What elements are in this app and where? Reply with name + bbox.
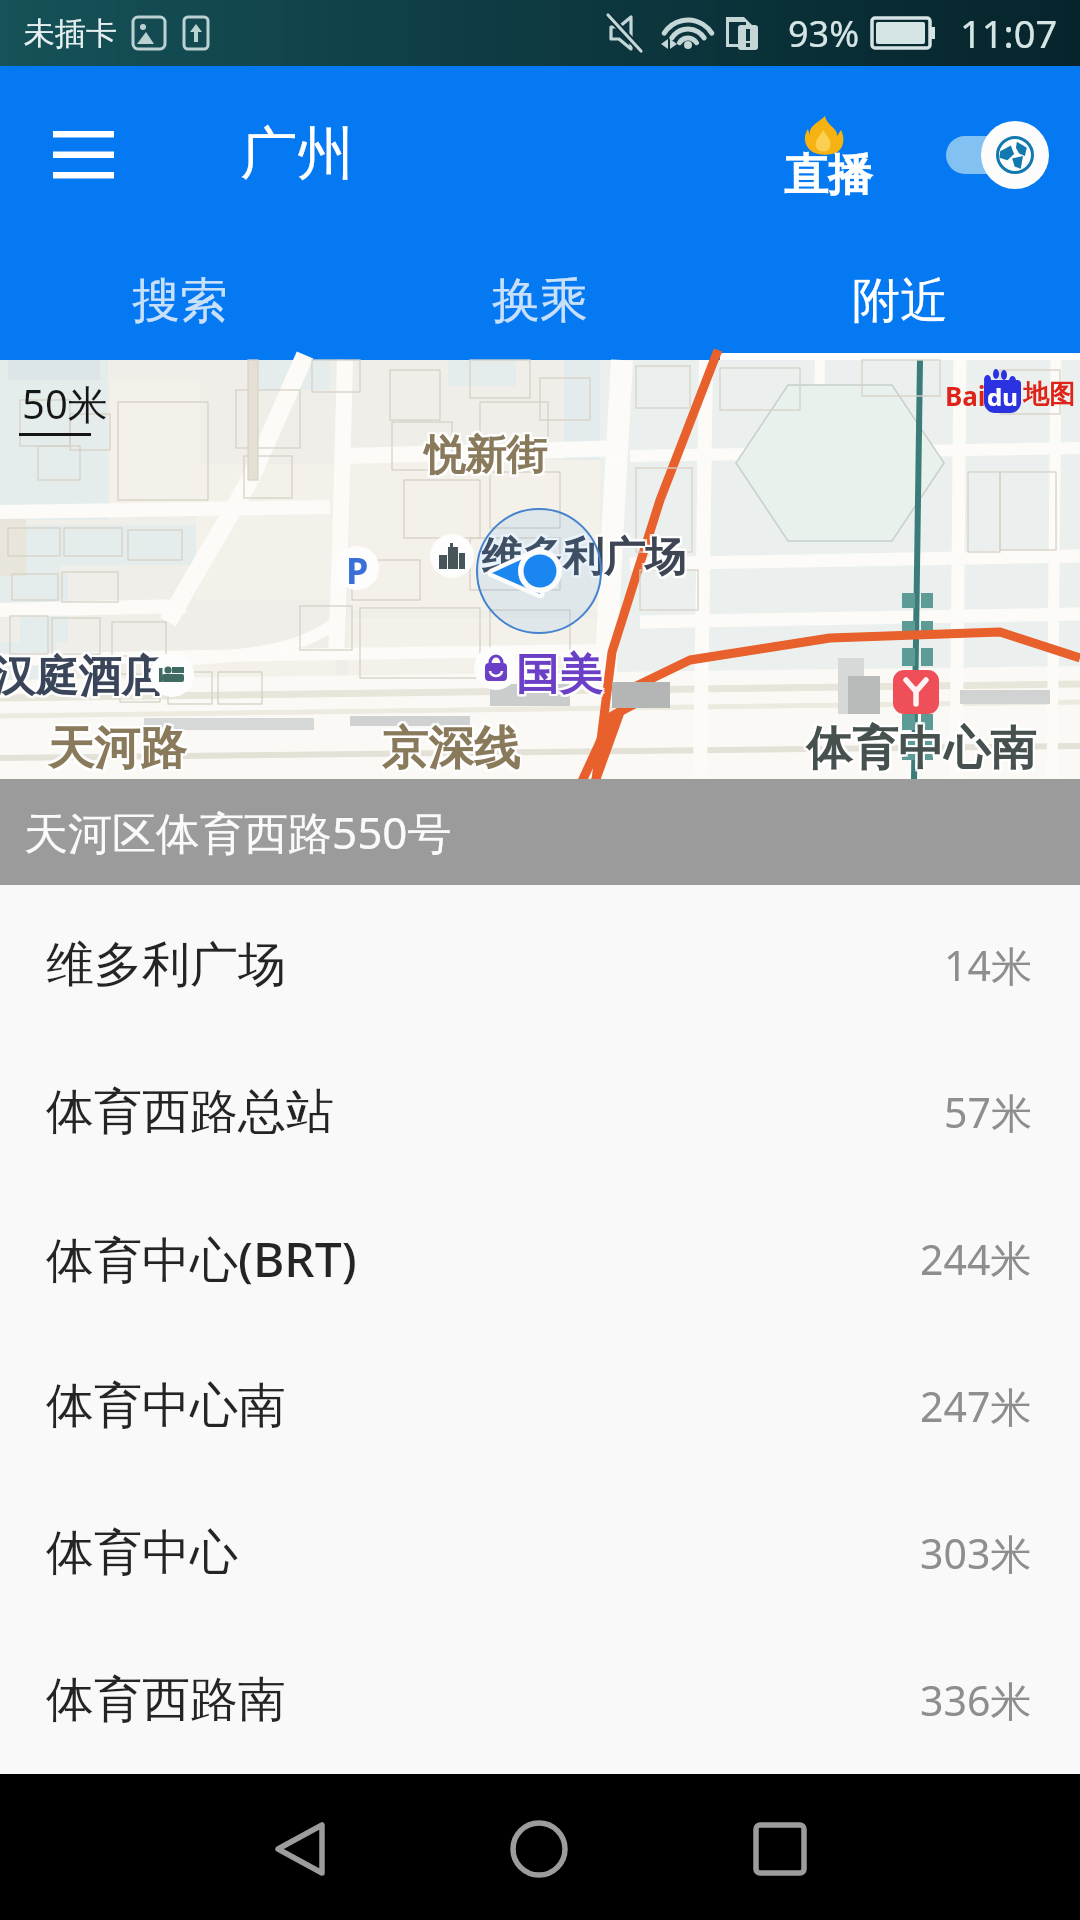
staticText: 国美 — [516, 646, 602, 700]
staticText: 搜索 — [132, 271, 228, 331]
staticText: 体育中心南 — [804, 722, 1034, 780]
button[interactable]: 体育中心南 — [0, 1332, 1080, 1479]
staticText: 换乘 — [492, 271, 588, 331]
staticText: 汉庭酒店 — [0, 650, 166, 704]
staticText: 11:07 — [960, 7, 1058, 59]
staticText: 国美 — [518, 646, 604, 700]
button[interactable]: Menu — [28, 99, 138, 209]
staticText: 悦新街 — [426, 430, 549, 482]
staticText: 57米 — [944, 1084, 1032, 1140]
staticText: 体育中心南 — [804, 718, 1034, 776]
staticText: 体育中心南 — [46, 1376, 286, 1436]
staticText: 悦新街 — [426, 428, 549, 480]
staticText: 附近 — [852, 271, 948, 331]
staticText: 维多利广场 — [479, 534, 684, 586]
staticText: 京深线 — [380, 720, 518, 778]
staticText: 维多利广场 — [481, 534, 686, 586]
staticText: 天河路 — [50, 718, 188, 776]
staticText: P — [346, 546, 369, 590]
staticText: 地图 — [1023, 378, 1075, 411]
button[interactable]: Switch to satellite map — [940, 112, 1056, 198]
staticText: 京深线 — [382, 720, 520, 778]
staticText: 体育中心南 — [808, 718, 1038, 776]
staticText: 悦新街 — [422, 432, 545, 484]
staticText: 体育中心南 — [806, 718, 1036, 776]
staticText: 天河路 — [46, 720, 184, 778]
staticText: 体育中心南 — [806, 720, 1036, 778]
staticText: 直播 — [784, 148, 872, 203]
staticText: 体育中心南 — [808, 720, 1038, 778]
staticText: 体育中心南 — [808, 722, 1038, 780]
staticText: 汉庭酒店 — [0, 652, 166, 706]
button[interactable]: Live broadcast — [770, 104, 882, 204]
staticText: 维多利广场 — [479, 530, 684, 582]
staticText: 悦新街 — [424, 428, 547, 480]
staticText: 93% — [788, 9, 860, 58]
staticText: 国美 — [518, 650, 604, 704]
button[interactable]: 体育西路总站 — [0, 1038, 1080, 1185]
staticText: 汉庭酒店 — [0, 648, 162, 702]
staticText: 国美 — [514, 648, 600, 702]
staticText: 未插卡 — [24, 14, 117, 53]
staticText: 京深线 — [380, 718, 518, 776]
staticText: 京深线 — [384, 720, 522, 778]
staticText: 天河路 — [46, 722, 184, 780]
staticText: 京深线 — [382, 718, 520, 776]
button[interactable]: 体育西路南 — [0, 1626, 1080, 1773]
staticText: 京深线 — [380, 722, 518, 780]
staticText: 天河路 — [48, 720, 186, 778]
staticText: 维多利广场 — [481, 532, 686, 584]
staticText: 京深线 — [382, 722, 520, 780]
staticText: 维多利广场 — [479, 532, 684, 584]
staticText: 体育中心南 — [804, 720, 1034, 778]
staticText: 维多利广场 — [483, 530, 688, 582]
staticText: 悦新街 — [424, 432, 547, 484]
staticText: 国美 — [518, 648, 604, 702]
staticText: 体育中心(BRT) — [46, 1226, 357, 1292]
staticText: 天河路 — [46, 718, 184, 776]
staticText: du — [987, 380, 1018, 413]
staticText: 14米 — [944, 937, 1032, 993]
staticText: 汉庭酒店 — [0, 652, 164, 706]
staticText: 汉庭酒店 — [0, 650, 162, 704]
staticText: 天河区体育西路550号 — [24, 802, 452, 862]
staticText: 汉庭酒店 — [0, 652, 162, 706]
staticText: 汉庭酒店 — [0, 648, 166, 702]
staticText: 京深线 — [384, 718, 522, 776]
staticText: 悦新街 — [424, 430, 547, 482]
staticText: 国美 — [516, 648, 602, 702]
button[interactable]: Recent apps — [720, 1789, 840, 1909]
staticText: 国美 — [516, 650, 602, 704]
staticText: 天河路 — [50, 722, 188, 780]
button[interactable]: 搜索 — [0, 241, 360, 360]
staticText: 体育西路总站 — [46, 1082, 334, 1142]
button[interactable]: 维多利广场 — [0, 891, 1080, 1038]
staticText: 天河路 — [48, 722, 186, 780]
button[interactable]: Home — [479, 1789, 599, 1909]
staticText: 悦新街 — [422, 430, 545, 482]
button[interactable]: 体育中心(BRT) — [0, 1185, 1080, 1332]
staticText: 汉庭酒店 — [0, 648, 164, 702]
staticText: 维多利广场 — [46, 935, 286, 995]
staticText: 247米 — [920, 1378, 1032, 1434]
staticText: 体育中心南 — [806, 722, 1036, 780]
staticText: 天河路 — [50, 720, 188, 778]
button[interactable]: 体育中心 — [0, 1479, 1080, 1626]
staticText: 国美 — [514, 650, 600, 704]
staticText: 悦新街 — [426, 432, 549, 484]
staticText: 维多利广场 — [483, 534, 688, 586]
staticText: 体育中心 — [46, 1523, 238, 1583]
button[interactable]: 附近 — [720, 241, 1080, 360]
button[interactable]: 换乘 — [360, 241, 720, 360]
button[interactable]: Back — [240, 1789, 360, 1909]
staticText: 维多利广场 — [483, 532, 688, 584]
staticText: 303米 — [920, 1525, 1032, 1581]
staticText: 244米 — [920, 1231, 1032, 1287]
staticText: 广州 — [240, 118, 354, 190]
staticText: 京深线 — [384, 722, 522, 780]
staticText: 国美 — [514, 646, 600, 700]
staticText: 体育西路南 — [46, 1670, 286, 1730]
staticText: 悦新街 — [422, 428, 545, 480]
staticText: 汉庭酒店 — [0, 650, 164, 704]
staticText: Bai — [945, 378, 986, 413]
